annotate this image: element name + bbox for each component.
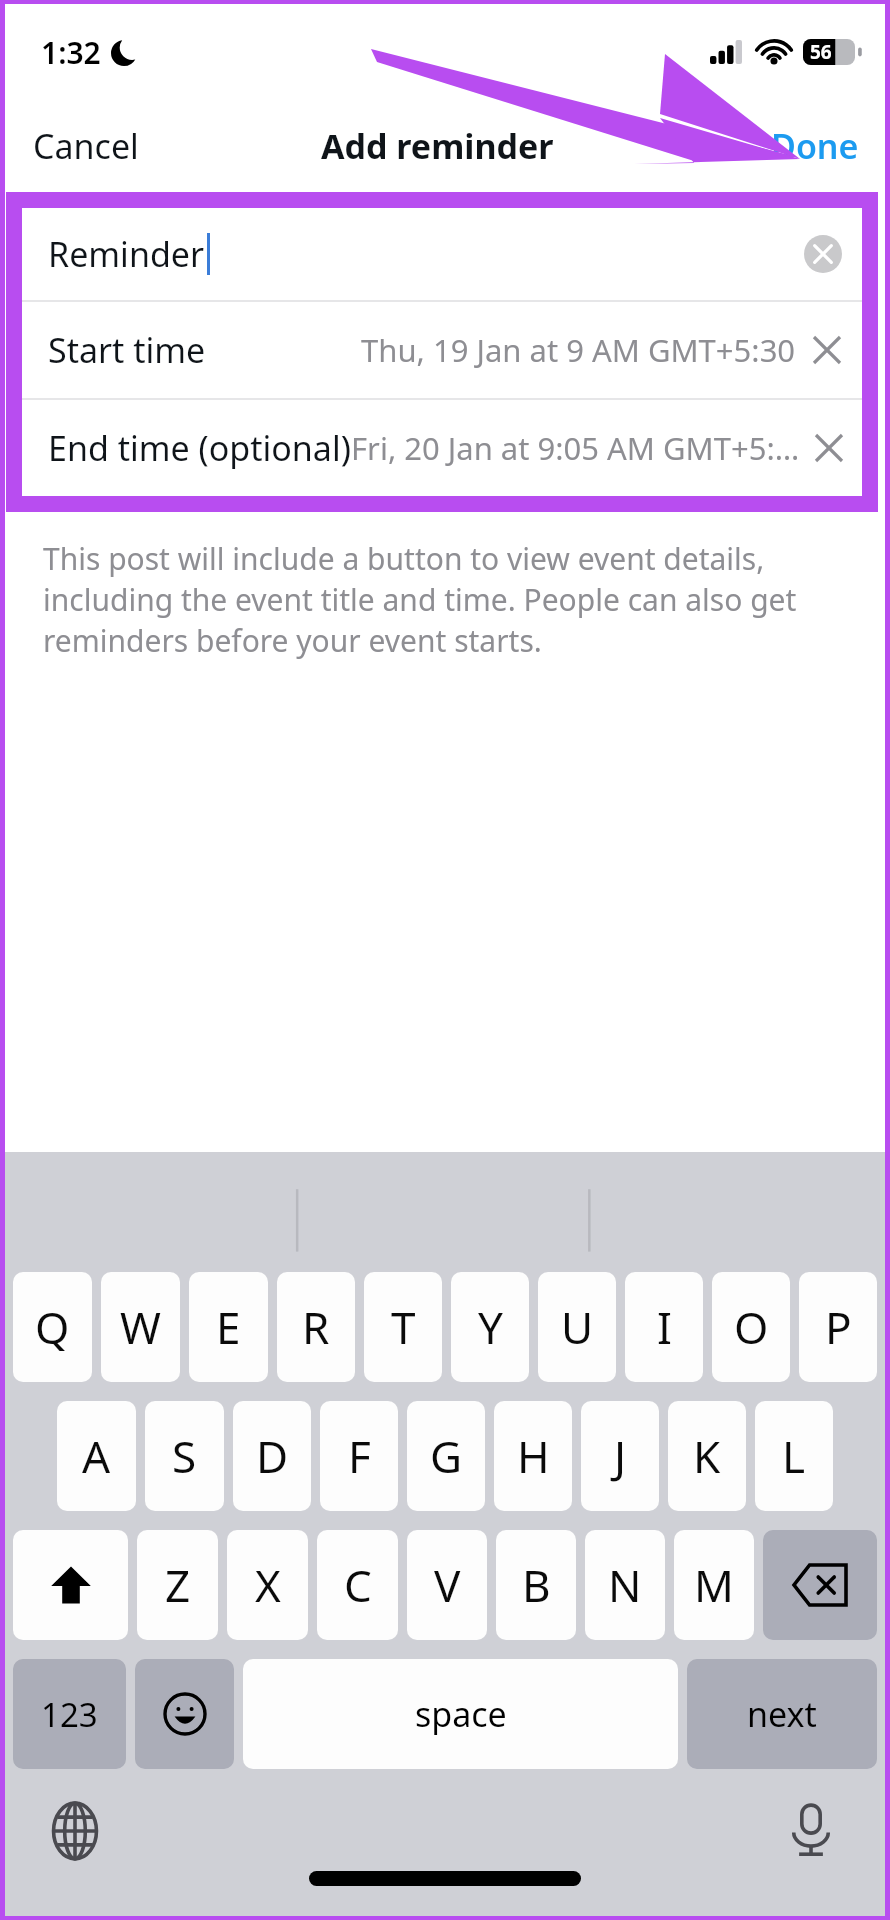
staticText: F xyxy=(348,1426,371,1486)
button[interactable]: Backspace xyxy=(763,1530,877,1640)
button[interactable]: Start time xyxy=(22,302,862,398)
button[interactable]: Clear End time (optional) xyxy=(814,431,844,465)
button[interactable]: Change keyboard language xyxy=(37,1793,113,1869)
staticText: A xyxy=(82,1426,111,1486)
staticText: Thu, 19 Jan at 9 AM GMT+5:30 xyxy=(361,329,796,371)
button[interactable]: L xyxy=(755,1401,833,1511)
button[interactable]: S xyxy=(145,1401,224,1511)
button[interactable]: End time (optional) xyxy=(22,400,862,496)
staticText: Y xyxy=(478,1297,503,1357)
button[interactable]: V xyxy=(407,1530,487,1640)
button[interactable]: Z xyxy=(137,1530,218,1640)
staticText: P xyxy=(825,1297,852,1357)
button[interactable]: R xyxy=(277,1272,355,1382)
staticText: N xyxy=(608,1555,642,1615)
button[interactable]: B xyxy=(496,1530,576,1640)
staticText: M xyxy=(694,1555,734,1615)
button[interactable]: Q xyxy=(13,1272,92,1382)
button[interactable]: Voice input xyxy=(773,1793,849,1869)
staticText: G xyxy=(430,1426,463,1486)
staticText: Done xyxy=(771,123,859,169)
button[interactable]: H xyxy=(494,1401,572,1511)
button[interactable]: E xyxy=(189,1272,268,1382)
button[interactable]: Y xyxy=(451,1272,529,1382)
staticText: R xyxy=(302,1297,330,1357)
button[interactable]: X xyxy=(227,1530,308,1640)
button[interactable]: F xyxy=(320,1401,398,1511)
staticText: 123 xyxy=(41,1692,98,1737)
button[interactable]: C xyxy=(317,1530,398,1640)
button[interactable]: T xyxy=(364,1272,442,1382)
button[interactable]: space xyxy=(243,1659,678,1769)
button[interactable]: G xyxy=(407,1401,485,1511)
button[interactable]: Shift xyxy=(13,1530,128,1640)
staticText: Fri, 20 Jan at 9:05 AM GMT+5:… xyxy=(351,427,800,469)
staticText: Add reminder xyxy=(321,123,554,169)
staticText: U xyxy=(561,1297,594,1357)
staticText: Reminder xyxy=(48,231,205,277)
staticText: Start time xyxy=(48,327,206,373)
button[interactable]: U xyxy=(538,1272,616,1382)
staticText: End time (optional) xyxy=(48,425,351,471)
staticText: 56 xyxy=(810,39,832,65)
staticText: K xyxy=(693,1426,721,1486)
button[interactable]: 123 xyxy=(13,1659,126,1769)
staticText: H xyxy=(517,1426,550,1486)
button[interactable]: next xyxy=(687,1659,877,1769)
staticText: Z xyxy=(165,1555,191,1615)
staticText: This post will include a button to view … xyxy=(43,538,853,661)
button[interactable]: A xyxy=(57,1401,136,1511)
button[interactable]: W xyxy=(101,1272,180,1382)
staticText: L xyxy=(782,1426,806,1486)
staticText: O xyxy=(734,1297,769,1357)
button[interactable]: I xyxy=(625,1272,703,1382)
button[interactable]: J xyxy=(581,1401,659,1511)
button[interactable]: Emoji xyxy=(135,1659,234,1769)
staticText: Cancel xyxy=(33,123,139,169)
button[interactable]: Clear title xyxy=(804,235,842,273)
button[interactable]: M xyxy=(674,1530,754,1640)
staticText: B xyxy=(522,1555,551,1615)
staticText: X xyxy=(255,1555,281,1615)
button[interactable]: O xyxy=(712,1272,790,1382)
button[interactable]: P xyxy=(799,1272,877,1382)
staticText: 1:32 xyxy=(41,32,101,73)
button[interactable]: Reminder xyxy=(22,208,862,300)
staticText: S xyxy=(172,1426,197,1486)
staticText: space xyxy=(415,1691,507,1737)
staticText: T xyxy=(391,1297,416,1357)
staticText: W xyxy=(120,1297,161,1357)
staticText: next xyxy=(747,1691,817,1737)
staticText: C xyxy=(344,1555,372,1615)
button[interactable]: Clear Start time xyxy=(810,333,844,367)
staticText: D xyxy=(256,1426,289,1486)
staticText: E xyxy=(216,1297,241,1357)
button[interactable]: Done xyxy=(751,111,885,181)
staticText: Q xyxy=(35,1297,70,1357)
staticText: V xyxy=(434,1555,461,1615)
button[interactable]: D xyxy=(233,1401,311,1511)
staticText: J xyxy=(614,1426,627,1486)
button[interactable]: N xyxy=(585,1530,665,1640)
staticText: I xyxy=(657,1297,672,1357)
button[interactable]: K xyxy=(668,1401,746,1511)
button[interactable]: Cancel xyxy=(5,111,159,181)
